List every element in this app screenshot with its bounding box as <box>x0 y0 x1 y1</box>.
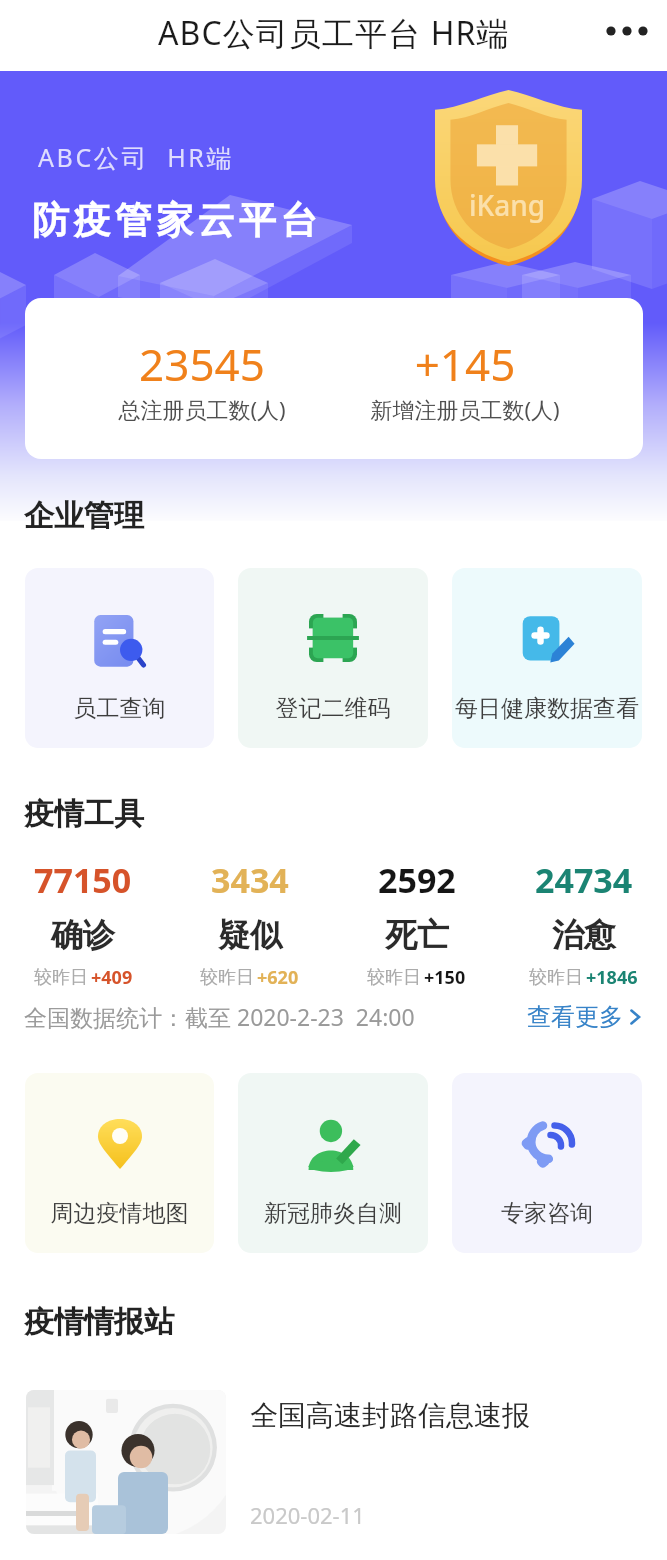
button[interactable]: 77150 <box>0 857 166 990</box>
button[interactable]: 24734 <box>500 857 667 990</box>
button[interactable]: 专家咨询 <box>452 1073 642 1253</box>
button[interactable]: 3434 <box>166 857 333 990</box>
staticText: 3434 <box>211 857 289 903</box>
button[interactable]: 查看更多 <box>527 1002 645 1032</box>
button[interactable]: 员工查询 <box>25 568 214 748</box>
button[interactable]: 登记二维码 <box>238 568 428 748</box>
staticText: 77150 <box>34 857 132 903</box>
staticText: 防疫管家云平台 <box>32 197 322 244</box>
staticText: 24734 <box>535 857 633 903</box>
staticText: ABC公司 HR端 <box>38 140 235 174</box>
staticText: +409 <box>91 965 133 990</box>
button[interactable]: More options <box>599 3 655 59</box>
staticText: iKang <box>469 186 546 224</box>
staticText: 企业管理 <box>24 497 144 535</box>
staticText: 查看更多 <box>527 1002 623 1032</box>
staticText: 死亡 <box>385 915 449 955</box>
button[interactable]: 新冠肺炎自测 <box>238 1073 428 1253</box>
staticText: 较昨日 <box>200 966 254 989</box>
staticText: 每日健康数据查看 <box>452 694 642 723</box>
staticText: 周边疫情地图 <box>25 1199 214 1228</box>
button[interactable]: 23545 <box>25 298 643 459</box>
staticText: 登记二维码 <box>238 694 428 723</box>
staticText: +620 <box>257 965 299 990</box>
staticText: 2020-02-11 <box>250 1500 365 1530</box>
staticText: 23545 <box>52 334 352 394</box>
staticText: +1846 <box>586 965 638 990</box>
button[interactable]: 全国高速封路信息速报 <box>26 1390 642 1534</box>
staticText: 确诊 <box>51 915 115 955</box>
staticText: 全国高速封路信息速报 <box>250 1398 530 1433</box>
staticText: 疫情工具 <box>24 795 144 833</box>
staticText: 较昨日 <box>34 966 88 989</box>
staticText: 较昨日 <box>367 966 421 989</box>
staticText: 新增注册员工数(人) <box>315 394 615 424</box>
staticText: 总注册员工数(人) <box>52 394 352 424</box>
staticText: 全国数据统计：截至 2020-2-23 24:00 <box>24 1001 415 1032</box>
staticText: 2592 <box>378 857 456 903</box>
button[interactable]: 周边疫情地图 <box>25 1073 214 1253</box>
staticText: 较昨日 <box>529 966 583 989</box>
staticText: 员工查询 <box>25 694 214 723</box>
staticText: +150 <box>424 965 466 990</box>
staticText: +145 <box>315 334 615 394</box>
staticText: 治愈 <box>552 915 616 955</box>
staticText: 疑似 <box>218 915 282 955</box>
staticText: 新冠肺炎自测 <box>238 1199 428 1228</box>
staticText: ABC公司员工平台 HR端 <box>158 11 510 55</box>
staticText: 疫情情报站 <box>24 1303 174 1341</box>
button[interactable]: 每日健康数据查看 <box>452 568 642 748</box>
button[interactable]: 2592 <box>333 857 500 990</box>
staticText: 专家咨询 <box>452 1199 642 1228</box>
